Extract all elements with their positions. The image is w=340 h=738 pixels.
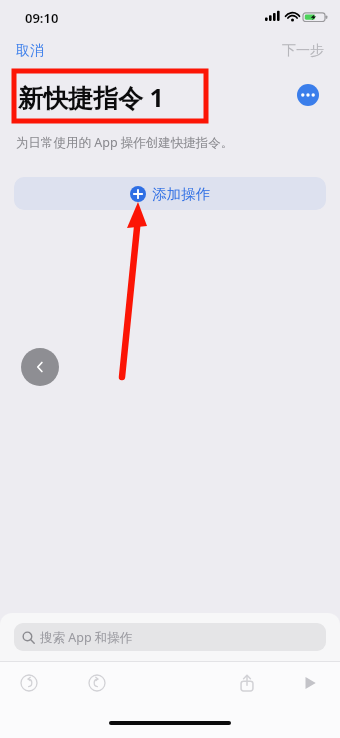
button[interactable]: Share (232, 668, 262, 698)
staticText: 取消 (16, 42, 44, 60)
staticText: 搜索 App 和操作 (40, 629, 133, 646)
button[interactable]: Redo (82, 668, 112, 698)
button[interactable]: 取消 (16, 42, 44, 60)
staticText: 下一步 (282, 42, 324, 60)
staticText: 添加操作 (152, 185, 210, 203)
staticText: 09:10 (25, 9, 59, 27)
button[interactable]: More options (297, 84, 319, 106)
staticText: 为日常使用的 App 操作创建快捷指令。 (16, 134, 234, 151)
button[interactable]: 添加操作 (14, 177, 326, 210)
button[interactable]: Back (21, 348, 59, 386)
button[interactable]: Undo (14, 668, 44, 698)
staticText: 新快捷指令 1 (18, 80, 164, 114)
button[interactable]: 搜索 App 和操作 (14, 623, 326, 651)
button[interactable]: Run (295, 668, 325, 698)
button[interactable]: 下一步 (282, 42, 324, 60)
